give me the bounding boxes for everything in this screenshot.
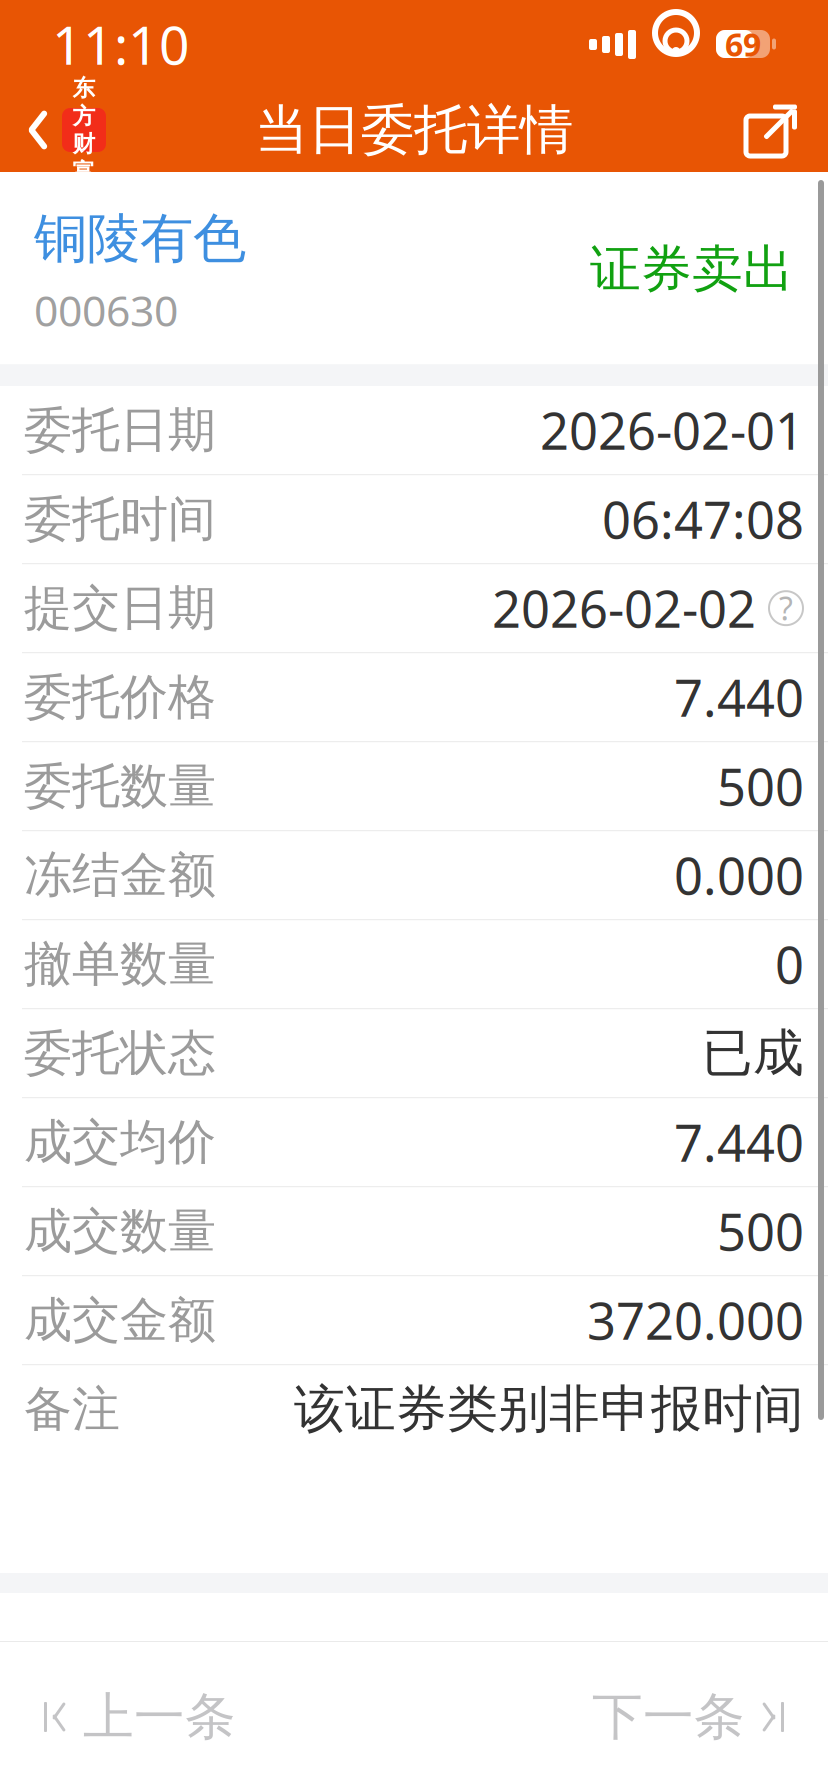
staticText: 成交金额 [24, 1291, 216, 1350]
staticText: 当日委托详情 [255, 97, 573, 163]
staticText: 已成 [702, 1022, 804, 1084]
staticText: 7.440 [674, 663, 804, 731]
staticText: 冻结金额 [24, 846, 216, 905]
button[interactable]: 返回 东方财富 [0, 94, 116, 166]
staticText: 上一条 [83, 1686, 236, 1748]
staticText: 东方 [72, 74, 95, 130]
staticText: 06:47:08 [602, 485, 804, 553]
staticText: 3720.000 [587, 1286, 804, 1354]
staticText: 下一条 [592, 1686, 745, 1748]
staticText: 500 [717, 1197, 804, 1265]
staticText: 委托日期 [24, 401, 216, 460]
staticText: 7.440 [674, 1108, 804, 1176]
staticText: 委托价格 [24, 668, 216, 727]
staticText: 000630 [34, 281, 178, 338]
staticText: 委托状态 [24, 1024, 216, 1083]
staticText: 备注 [24, 1380, 120, 1439]
staticText: 委托时间 [24, 490, 216, 549]
staticText: 撤单数量 [24, 935, 216, 994]
button[interactable]: 分享 [716, 86, 828, 174]
staticText: 2026-02-02 [492, 574, 756, 642]
staticText: 0 [775, 930, 804, 998]
button[interactable]: 下一条 [548, 1658, 828, 1776]
staticText: 财富 [72, 130, 95, 186]
staticText: 69 [725, 23, 761, 65]
staticText: 500 [717, 752, 804, 820]
staticText: 成交数量 [24, 1202, 216, 1261]
staticText: 2026-02-01 [540, 396, 804, 464]
staticText: ? [779, 587, 793, 629]
staticText: 该证券类别非申报时间 [294, 1378, 804, 1440]
staticText: 11:10 [52, 9, 190, 79]
button[interactable]: 上一条 [0, 1658, 280, 1776]
staticText: 委托数量 [24, 757, 216, 816]
staticText: 铜陵有色 [34, 206, 246, 271]
staticText: 成交均价 [24, 1113, 216, 1172]
staticText: 证券卖出 [590, 238, 794, 300]
staticText: 0.000 [674, 841, 804, 909]
staticText: 提交日期 [24, 579, 216, 638]
